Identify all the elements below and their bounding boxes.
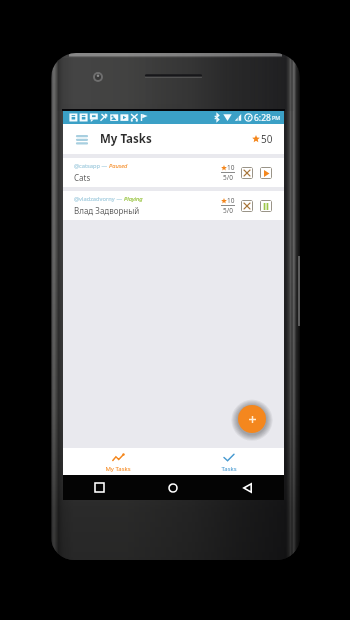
- button[interactable]: Stop: [241, 167, 253, 179]
- button[interactable]: Home: [136, 475, 210, 500]
- staticText: 5/0: [223, 206, 233, 215]
- staticText: My Tasks: [105, 465, 131, 473]
- button[interactable]: Play: [260, 167, 272, 179]
- staticText: @catsapp: [74, 162, 100, 170]
- button[interactable]: Tasks: [173, 448, 284, 475]
- staticText: 10: [227, 196, 235, 205]
- staticText: —: [100, 162, 109, 170]
- button[interactable]: Recents: [63, 475, 136, 500]
- button[interactable]: @catsapp: [63, 158, 284, 187]
- button[interactable]: @vladzadvorny: [63, 191, 284, 220]
- staticText: —: [115, 195, 124, 203]
- staticText: 50: [261, 132, 273, 146]
- staticText: 6:28: [254, 112, 271, 124]
- staticText: Влад Задворный: [74, 205, 140, 216]
- staticText: Playing: [124, 195, 143, 203]
- button[interactable]: My Tasks: [63, 448, 173, 475]
- staticText: 5/0: [223, 173, 233, 182]
- button[interactable]: Stop: [241, 200, 253, 212]
- button[interactable]: Pause: [260, 200, 272, 212]
- staticText: My Tasks: [100, 131, 152, 147]
- staticText: Paused: [109, 162, 128, 170]
- staticText: Cats: [74, 172, 91, 183]
- staticText: PM: [272, 114, 281, 121]
- button[interactable]: Add task: [238, 405, 266, 433]
- staticText: @vladzadvorny: [74, 195, 115, 203]
- button[interactable]: Menu: [72, 129, 92, 149]
- button[interactable]: Back: [210, 475, 284, 500]
- button[interactable]: 50: [250, 130, 275, 148]
- staticText: 10: [227, 163, 235, 172]
- staticText: Tasks: [221, 465, 237, 473]
